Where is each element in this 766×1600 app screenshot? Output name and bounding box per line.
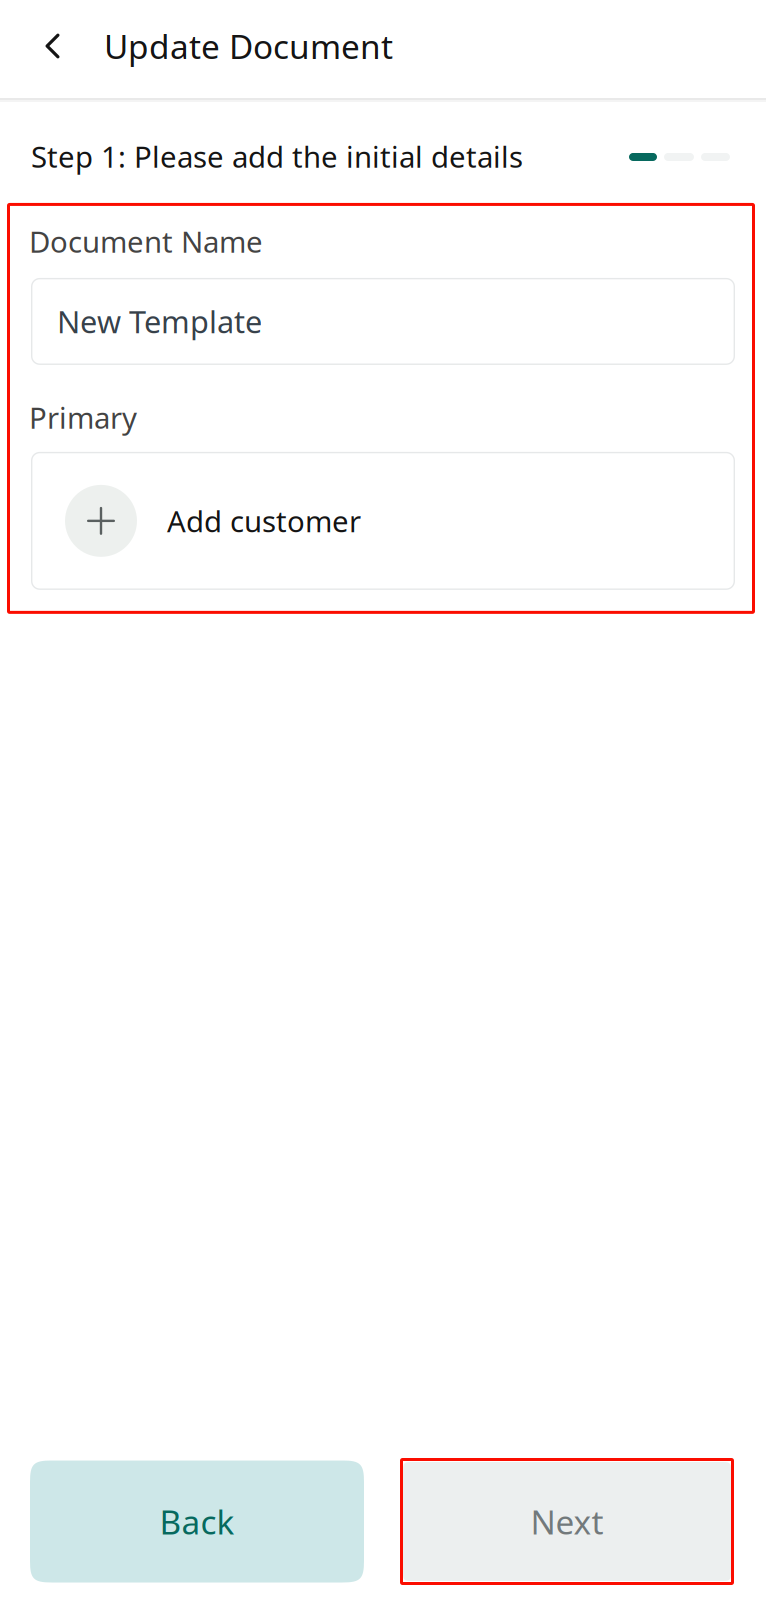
button[interactable]: Back	[30, 1460, 364, 1582]
button[interactable]: Next	[400, 1458, 734, 1585]
staticText: Next	[530, 1499, 603, 1544]
staticText: Update Document	[104, 24, 393, 68]
button[interactable]: Back	[0, 0, 69, 92]
staticText: Add customer	[167, 501, 361, 540]
staticText: Document Name	[29, 222, 263, 261]
staticText: New Template	[57, 301, 262, 342]
staticText: Primary	[29, 398, 137, 437]
staticText: Back	[159, 1499, 234, 1544]
staticText: Step 1: Please add the initial details	[31, 137, 523, 176]
button[interactable]: New Template	[0, 278, 766, 365]
button[interactable]: Add customer	[0, 452, 766, 590]
